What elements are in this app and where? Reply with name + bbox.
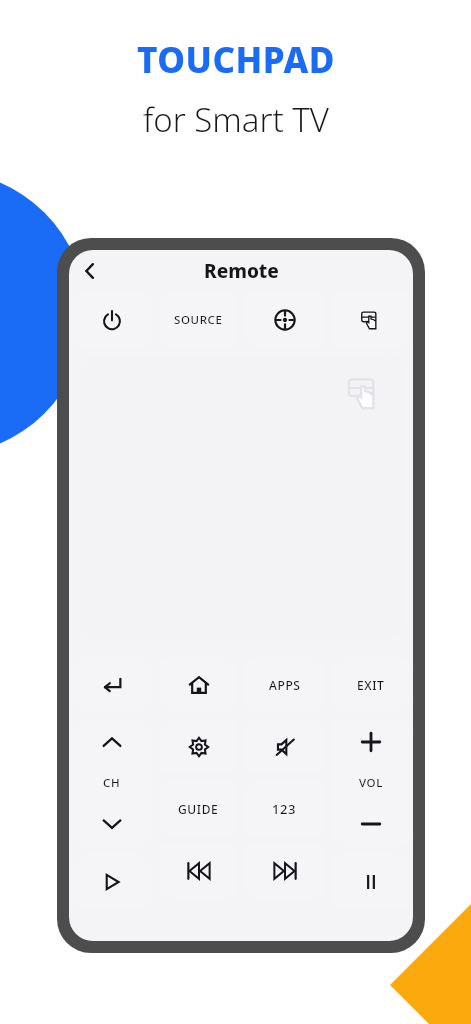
staticText: APPS <box>269 677 301 693</box>
staticText: EXIT <box>357 677 385 693</box>
staticText: CH <box>103 775 121 791</box>
staticText: SOURCE <box>174 312 223 328</box>
button[interactable]: Numbers <box>245 781 324 836</box>
button[interactable]: Volume <box>331 719 410 847</box>
staticText: Remote <box>204 258 279 284</box>
button[interactable]: Play <box>72 854 152 909</box>
button[interactable]: Back <box>73 254 107 288</box>
button[interactable]: Return <box>72 657 152 712</box>
staticText: for Smart TV <box>143 97 329 142</box>
button[interactable]: Mute <box>245 719 324 774</box>
staticText: TOUCHPAD <box>137 36 335 84</box>
staticText: GUIDE <box>178 801 219 817</box>
button[interactable]: Touchpad mode <box>331 292 410 347</box>
button[interactable]: Exit <box>331 657 410 712</box>
button[interactable]: Source <box>159 292 238 347</box>
button[interactable]: Home <box>159 657 238 712</box>
button[interactable]: Channel <box>72 719 152 847</box>
staticText: VOL <box>359 775 383 791</box>
button[interactable]: Rewind <box>159 843 238 898</box>
button[interactable]: Settings <box>159 719 238 774</box>
button[interactable]: Guide <box>159 781 238 836</box>
button[interactable]: D-pad <box>245 292 324 347</box>
button[interactable]: Pause <box>331 854 410 909</box>
button[interactable]: Fast forward <box>245 843 324 898</box>
button[interactable]: Apps <box>245 657 324 712</box>
staticText: 123 <box>272 800 297 818</box>
button[interactable]: Power <box>72 292 152 347</box>
